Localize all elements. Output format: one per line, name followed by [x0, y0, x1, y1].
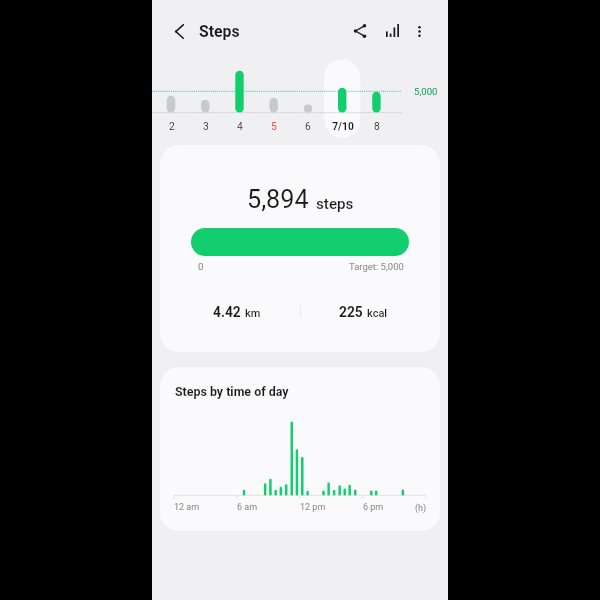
staticText: steps [316, 195, 354, 213]
staticText: Steps by time of day [175, 384, 289, 399]
button[interactable]: 7/10 [325, 60, 360, 138]
staticText: (h) [415, 503, 427, 514]
button[interactable]: Share [342, 13, 378, 49]
staticText: 2 [169, 120, 175, 132]
button[interactable]: 6 [290, 60, 325, 138]
staticText: kcal [367, 307, 388, 320]
button[interactable]: 2 [154, 60, 189, 138]
staticText: 8 [374, 120, 380, 132]
staticText: 12 am [174, 502, 200, 513]
staticText: 4 [237, 120, 243, 132]
staticText: km [245, 307, 261, 320]
button[interactable]: More options [401, 13, 437, 49]
button[interactable]: 4 [222, 60, 257, 138]
button[interactable]: Trends chart [374, 12, 410, 48]
staticText: 6 am [237, 502, 258, 513]
button[interactable]: Back [161, 13, 197, 49]
staticText: Target: 5,000 [349, 261, 404, 272]
staticText: 5,894 [247, 185, 309, 215]
button[interactable]: Steps by time of day [160, 367, 440, 531]
staticText: 4.42 [213, 304, 241, 320]
staticText: 0 [198, 261, 204, 272]
button[interactable]: 3 [188, 60, 223, 138]
staticText: 5 [271, 120, 277, 132]
staticText: 6 [305, 120, 311, 132]
staticText: 12 pm [300, 502, 326, 513]
button[interactable]: 8 [359, 60, 394, 138]
button[interactable]: 4.42 [213, 292, 261, 320]
staticText: 225 [339, 304, 363, 320]
staticText: 3 [203, 120, 209, 132]
staticText: 5,000 [414, 86, 438, 97]
button[interactable]: 5,894 [160, 145, 440, 352]
staticText: 6 pm [363, 502, 384, 513]
button[interactable]: 225 [339, 292, 388, 320]
staticText: Steps [199, 22, 240, 41]
staticText: 7/10 [332, 120, 354, 132]
button[interactable]: 5 [256, 60, 291, 138]
